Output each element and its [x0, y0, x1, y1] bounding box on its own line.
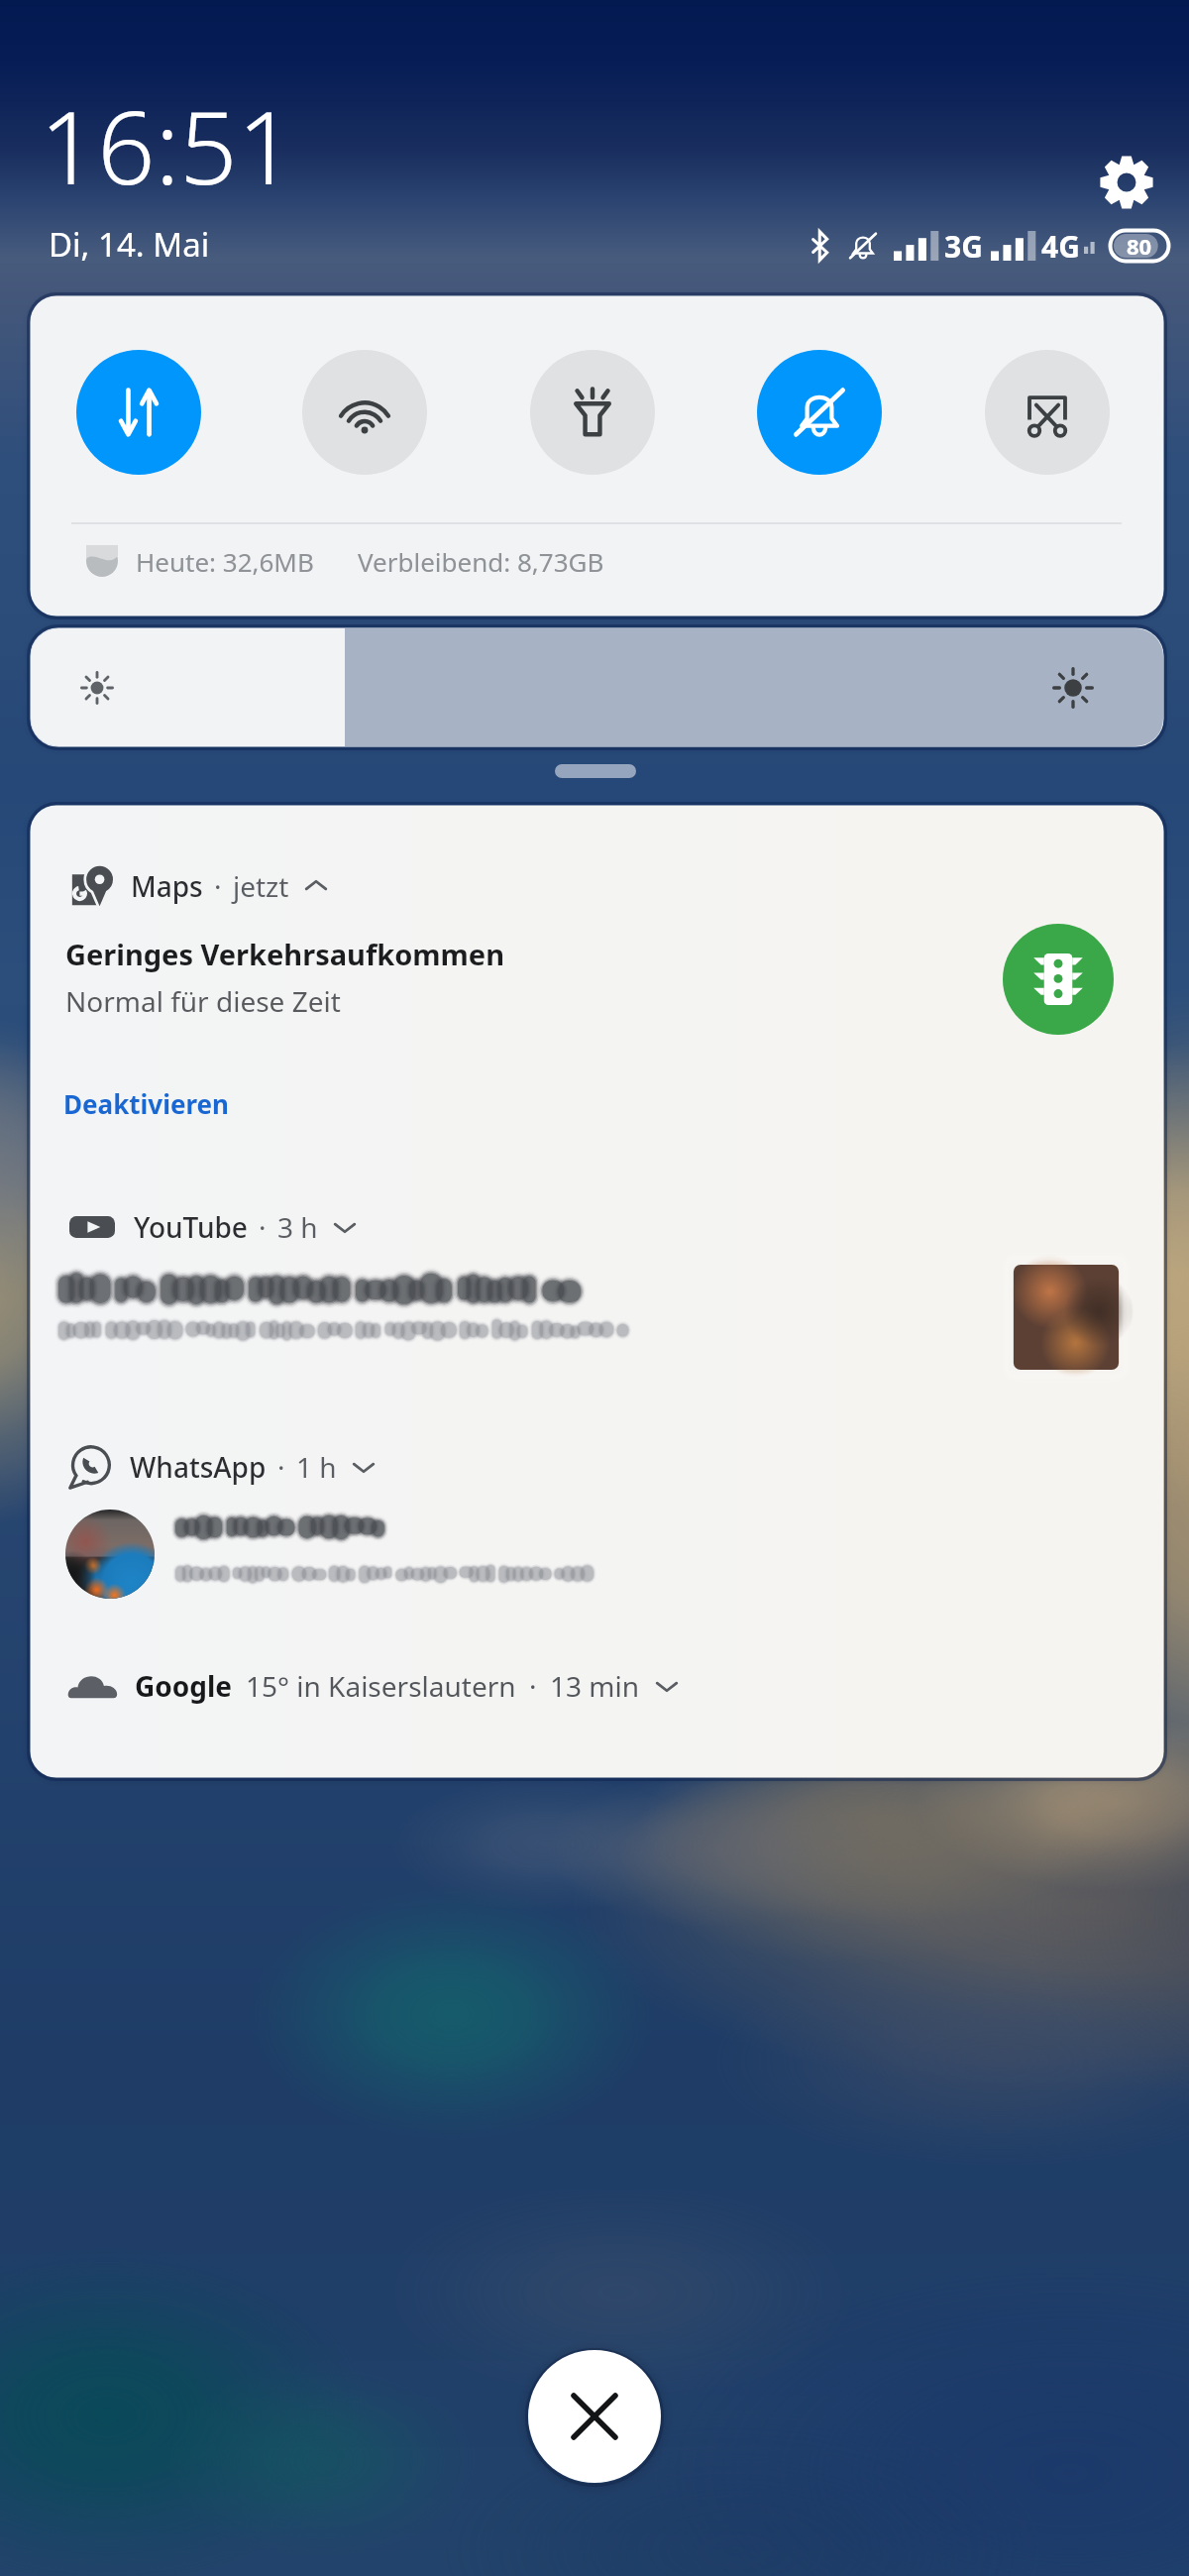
staticText: 3G	[944, 226, 983, 266]
staticText: Geringes Verkehrsaufkommen	[65, 935, 505, 973]
staticText: ·	[259, 1208, 267, 1246]
staticText: WhatsApp	[130, 1448, 267, 1486]
button[interactable]: Screenshot	[985, 350, 1110, 475]
button[interactable]: Wi-Fi	[302, 350, 427, 475]
button[interactable]: Mobile data	[76, 350, 201, 475]
staticText: 15° in Kaiserslautern	[246, 1667, 516, 1705]
button[interactable]: Brightness	[31, 628, 1163, 746]
button[interactable]: Settings	[1091, 147, 1162, 218]
staticText: Deaktivieren	[63, 1086, 229, 1121]
staticText: YouTube	[134, 1208, 248, 1246]
button[interactable]: Google	[31, 1658, 1163, 1777]
staticText: 13 min	[550, 1667, 640, 1705]
staticText: 1 h	[296, 1448, 337, 1486]
button[interactable]: Close	[528, 2350, 661, 2483]
staticText: 16:51	[40, 76, 295, 214]
staticText: 3 h	[277, 1208, 318, 1246]
staticText: Di, 14. Mai	[49, 222, 210, 267]
button[interactable]: Deaktivieren	[54, 1074, 239, 1133]
staticText: Normal für diese Zeit	[65, 982, 341, 1020]
staticText: ·	[214, 867, 222, 905]
staticText: jetzt	[233, 867, 289, 905]
button[interactable]: Maps	[31, 806, 1163, 1173]
staticText: ·	[529, 1667, 537, 1705]
staticText: Google	[135, 1667, 233, 1705]
button[interactable]: WhatsApp	[31, 1420, 1163, 1658]
staticText: 80	[1127, 231, 1152, 261]
staticText: Verbleibend: 8,73GB	[358, 544, 604, 579]
button[interactable]: Collapse panel	[519, 742, 672, 800]
staticText: Heute: 32,6MB	[136, 544, 314, 579]
button[interactable]: Silent mode	[757, 350, 882, 475]
staticText: 4G	[1041, 226, 1080, 266]
button[interactable]: Flashlight	[530, 350, 655, 475]
other: Traffic	[1003, 924, 1114, 1035]
button[interactable]: YouTube	[31, 1173, 1163, 1420]
staticText: Maps	[131, 867, 203, 905]
staticText: ·	[277, 1448, 285, 1486]
